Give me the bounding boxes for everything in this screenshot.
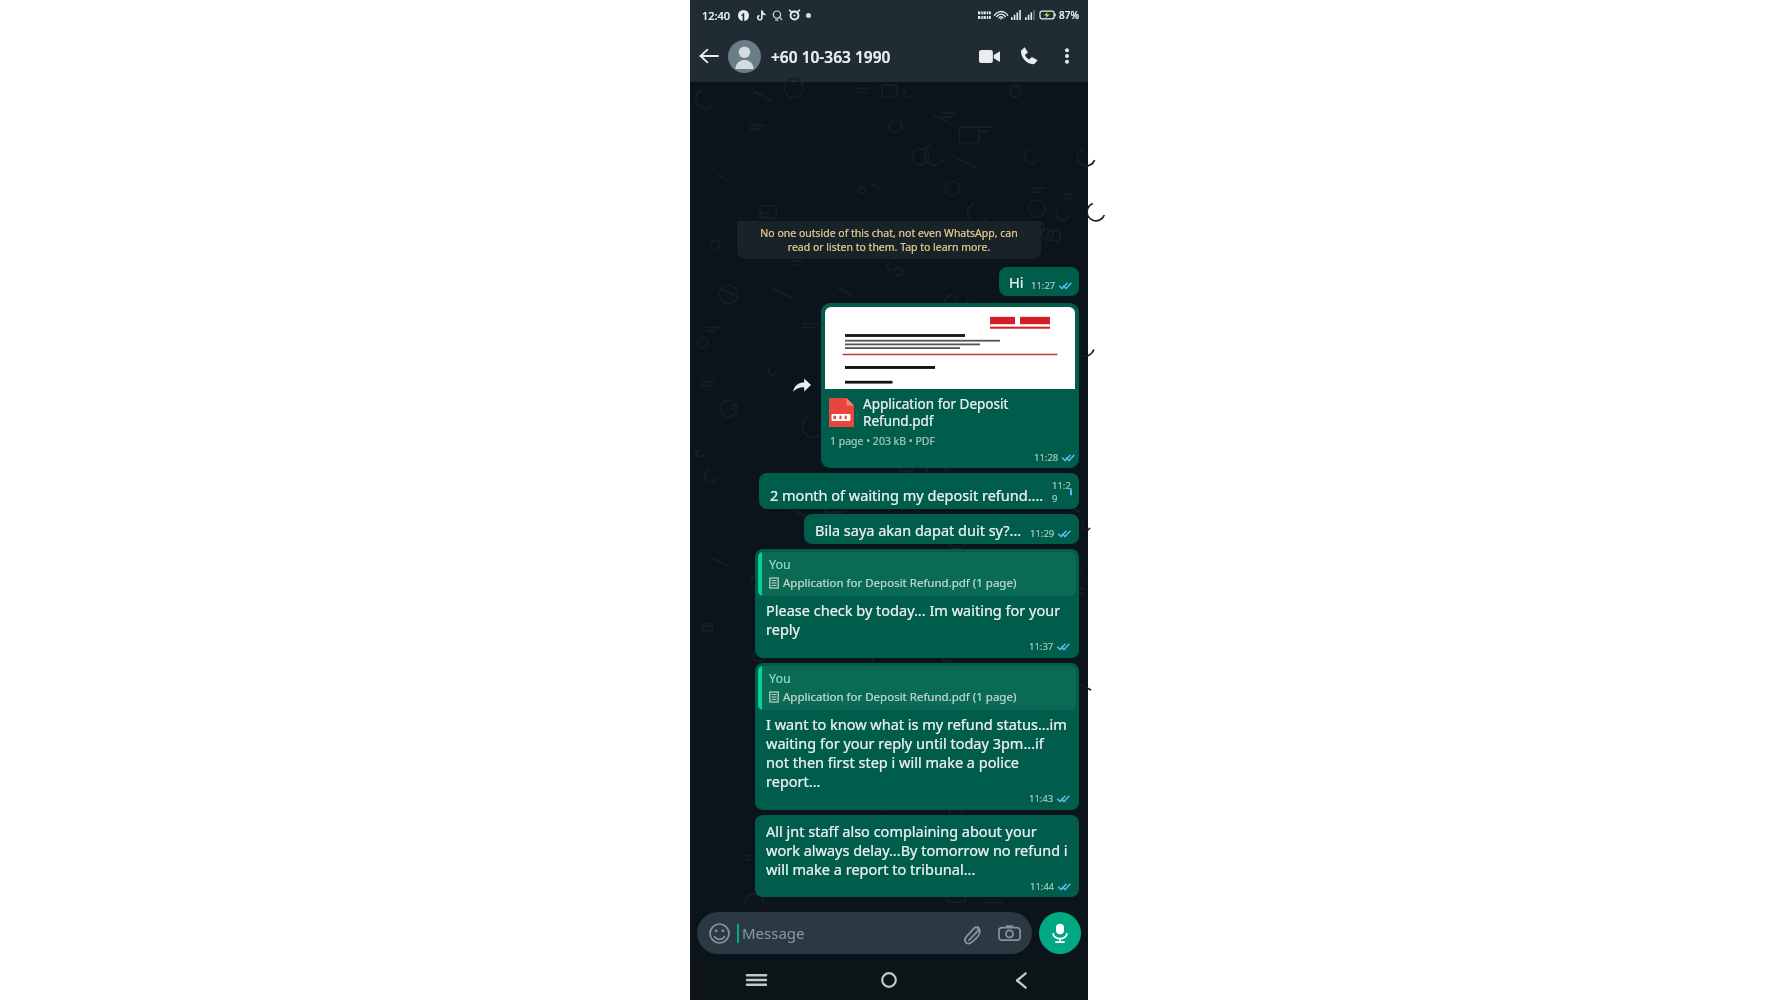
staticText: Application for Deposit Refund.pdf [863,395,1073,430]
staticText: You [769,556,791,573]
button[interactable]: Back [690,37,728,75]
button[interactable]: Camera [996,920,1022,946]
button[interactable]: You [755,663,1079,810]
staticText: You [769,670,791,687]
staticText: Application for Deposit Refund.pdf (1 pa… [783,575,1017,591]
staticText: 2 month of waiting my deposit refund.... [770,485,1044,505]
staticText: Application for Deposit Refund.pdf (1 pa… [783,689,1017,705]
staticText: Message [742,923,805,943]
staticText: 11:37 [1029,640,1054,653]
button[interactable]: You [755,549,1079,658]
button[interactable]: Forwarded [791,375,813,397]
staticText: 12:40 [702,8,731,23]
button[interactable]: Voice message [1039,912,1081,954]
button[interactable]: Home [822,960,955,1000]
button[interactable]: Attach [960,920,986,946]
staticText: 11:29 [1052,479,1071,505]
staticText: All jnt staff also complaining about you… [766,821,1071,879]
button[interactable]: Back [955,960,1088,1000]
button[interactable]: 2 month of waiting my deposit refund.... [759,473,1079,509]
button[interactable]: Bila saya akan dapat duit sy?... [804,514,1079,544]
staticText: 1 page • 203 kB • PDF [830,434,935,448]
button[interactable]: Recents [690,960,822,1000]
staticText: 11:43 [1029,792,1054,805]
button[interactable]: Video call [969,36,1009,76]
button[interactable]: All jnt staff also complaining about you… [755,815,1079,897]
button[interactable]: Emoji [697,912,1032,954]
button[interactable]: More options [1049,38,1085,74]
staticText: 11:28 [1034,451,1059,464]
button[interactable]: No one outside of this chat, not even Wh… [737,221,1041,259]
staticText: I want to know what is my refund status.… [766,714,1070,791]
staticText: Bila saya akan dapat duit sy?... [815,520,1022,540]
staticText: Hi [1009,272,1024,292]
button[interactable]: Hi [999,267,1079,296]
button[interactable]: +60 10-363 1990 [771,46,969,67]
staticText: No one outside of this chat, not even Wh… [749,226,1029,254]
staticText: 11:44 [1030,880,1055,893]
staticText: 87% [1059,8,1079,22]
button[interactable]: Voice call [1009,36,1049,76]
staticText: 11:29 [1030,527,1055,540]
staticText: Please check by today... Im waiting for … [766,600,1070,639]
button[interactable]: Profile photo [728,40,761,73]
staticText: +60 10-363 1990 [771,46,891,67]
staticText: 11:27 [1031,279,1056,292]
button[interactable]: Application for Deposit Refund.pdf [821,303,1079,468]
button[interactable]: Emoji [707,921,731,945]
